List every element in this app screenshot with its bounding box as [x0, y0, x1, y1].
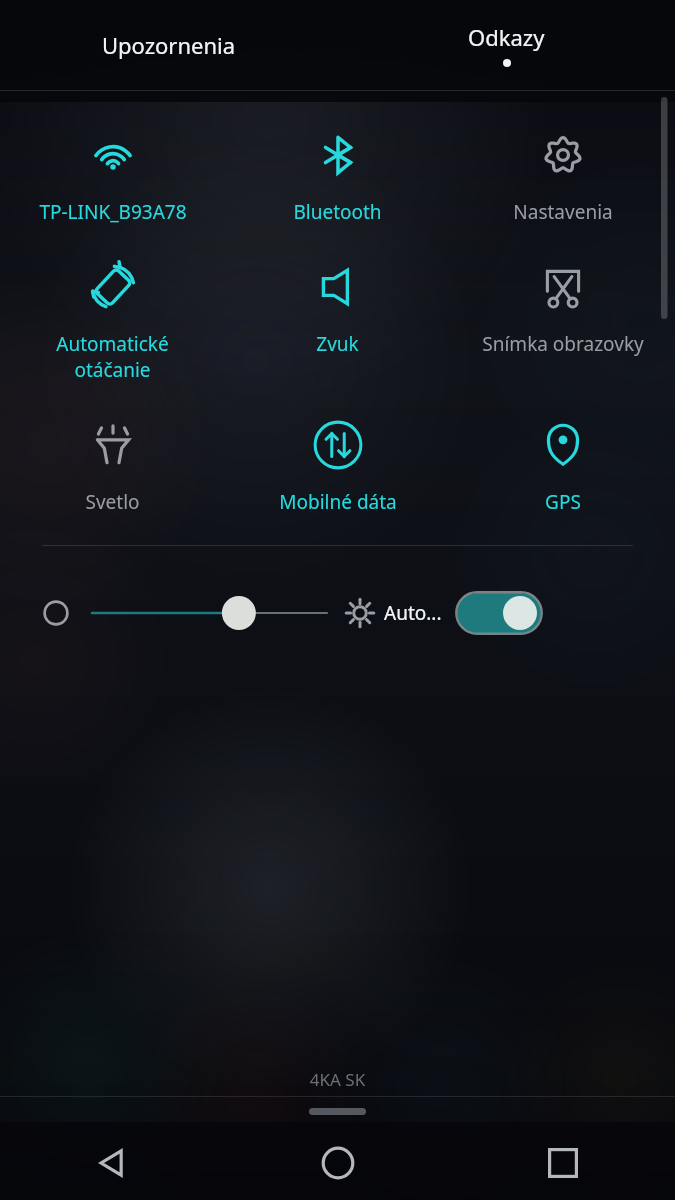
staticText: Bluetooth	[293, 199, 382, 225]
button[interactable]: Back	[0, 1125, 225, 1200]
button[interactable]: Svetlo	[0, 419, 225, 515]
button[interactable]: Nastavenia	[450, 129, 675, 225]
staticText: Odkazy	[468, 22, 545, 52]
button[interactable]: Recent apps	[450, 1125, 675, 1200]
staticText: Automatické otáčanie	[56, 331, 169, 383]
button[interactable]: Mobilné dáta	[225, 419, 450, 515]
button[interactable]: TP-LINK_B93A78	[0, 129, 225, 225]
button[interactable]: Bluetooth	[225, 129, 450, 225]
staticText: Nastavenia	[513, 199, 613, 225]
button[interactable]: Brightness slider	[92, 587, 327, 639]
button[interactable]: Snímka obrazovky	[450, 261, 675, 357]
button[interactable]: Home	[225, 1125, 450, 1200]
button[interactable]: Zvuk	[225, 261, 450, 357]
staticText: 4KA SK	[0, 1068, 675, 1091]
button[interactable]: Minimum brightness	[34, 591, 78, 635]
button[interactable]: Automatické otáčanie	[0, 261, 225, 383]
button[interactable]: GPS	[450, 419, 675, 515]
staticText: TP-LINK_B93A78	[39, 199, 187, 225]
button[interactable]: Upozornenia	[0, 0, 337, 89]
staticText: Mobilné dáta	[279, 489, 397, 515]
button[interactable]: Auto...	[345, 583, 641, 643]
staticText: Snímka obrazovky	[482, 331, 644, 357]
staticText: Auto...	[384, 600, 442, 626]
staticText: Svetlo	[85, 489, 140, 515]
staticText: Zvuk	[316, 331, 359, 357]
staticText: Upozornenia	[102, 30, 236, 60]
button[interactable]: Odkazy	[337, 0, 675, 89]
button[interactable]: Collapse panel	[0, 1097, 675, 1125]
staticText: GPS	[545, 489, 581, 515]
